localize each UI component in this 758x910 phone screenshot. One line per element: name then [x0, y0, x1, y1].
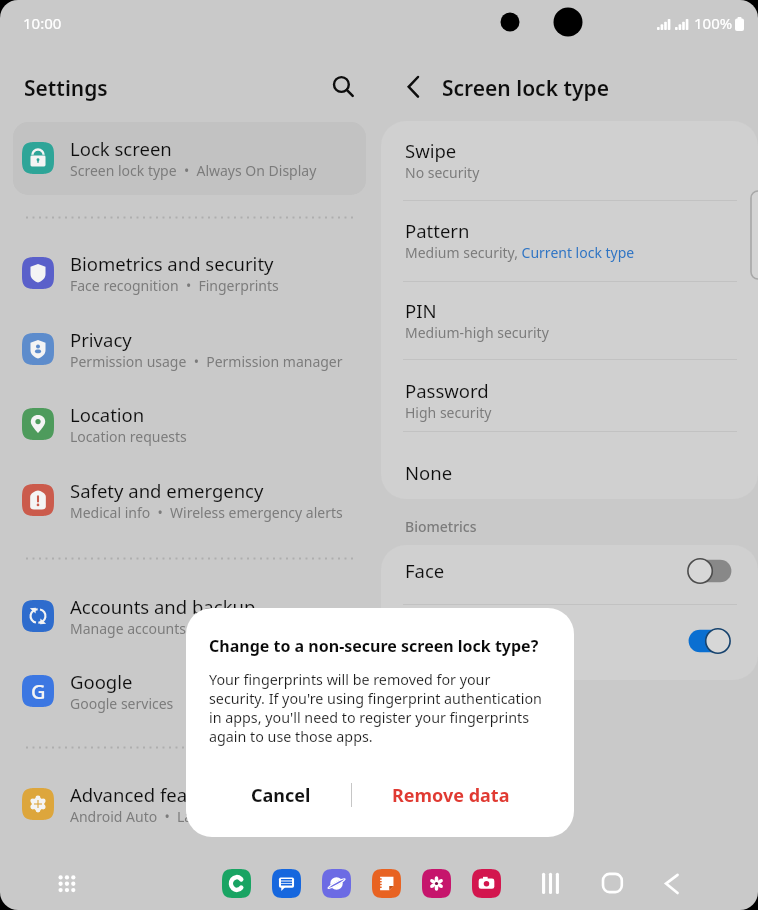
staticText: Biometrics and security: [70, 251, 274, 276]
staticText: Location: [70, 402, 145, 427]
staticText: Google services: [70, 694, 174, 713]
button[interactable]: Search: [324, 67, 360, 103]
staticText: Location requests: [70, 427, 187, 446]
staticText: 10:00: [23, 13, 62, 33]
staticText: Password: [405, 378, 489, 403]
button[interactable]: Recents: [538, 869, 572, 897]
button[interactable]: G: [0, 654, 372, 728]
staticText: Fingerprints: [405, 628, 512, 653]
staticText: Face recognition • Fingerprints: [70, 276, 279, 295]
staticText: 100%: [694, 13, 733, 33]
button[interactable]: Safety and emergency: [0, 463, 372, 537]
button[interactable]: Apps: [50, 867, 84, 901]
button[interactable]: Biometrics and security: [0, 236, 372, 310]
button[interactable]: Location: [0, 387, 372, 461]
button[interactable]: Privacy: [0, 312, 372, 386]
staticText: Google: [70, 669, 133, 694]
button[interactable]: Remove data: [358, 766, 543, 824]
staticText: Medium security, Current lock type: [405, 243, 635, 262]
button[interactable]: None: [381, 435, 758, 513]
staticText: Medium-high security: [405, 323, 549, 342]
button[interactable]: Face: [381, 542, 758, 600]
staticText: Advanced features: [70, 782, 232, 807]
staticText: Android Auto • Labs: [70, 807, 208, 826]
button[interactable]: Face: [684, 554, 732, 588]
staticText: Lock screen: [70, 136, 172, 161]
staticText: Face: [405, 558, 445, 583]
staticText: Cancel: [251, 783, 311, 808]
staticText: Your fingerprints will be removed for yo…: [209, 670, 545, 746]
button[interactable]: Home: [598, 869, 632, 897]
staticText: Screen lock type • Always On Display: [70, 161, 317, 180]
button[interactable]: Messages: [272, 869, 301, 898]
staticText: Accounts and backup: [70, 594, 256, 619]
staticText: None: [405, 460, 453, 485]
staticText: Manage accounts: [70, 619, 187, 638]
button[interactable]: Phone: [222, 869, 251, 898]
staticText: Pattern: [405, 218, 470, 243]
staticText: Permission usage • Permission manager: [70, 352, 343, 371]
staticText: Screen lock type: [442, 74, 609, 103]
button[interactable]: Gallery: [422, 869, 451, 898]
button[interactable]: Accounts and backup: [0, 579, 372, 653]
staticText: High security: [405, 403, 492, 422]
staticText: Safety and emergency: [70, 478, 264, 503]
button[interactable]: Lock screen: [13, 122, 366, 195]
button[interactable]: Password: [381, 362, 758, 440]
staticText: Remove data: [392, 783, 510, 808]
staticText: Privacy: [70, 327, 132, 352]
staticText: Medical info • Wireless emergency alerts: [70, 503, 343, 522]
staticText: Settings: [24, 74, 108, 103]
button[interactable]: Fingerprints: [381, 612, 758, 670]
button[interactable]: Internet: [322, 869, 351, 898]
staticText: Biometrics: [405, 517, 477, 536]
button[interactable]: Advanced features: [0, 767, 372, 841]
staticText: No security: [405, 163, 480, 182]
button[interactable]: Pattern: [381, 202, 758, 280]
button[interactable]: Fingerprints: [684, 624, 732, 658]
button[interactable]: PIN: [381, 282, 758, 360]
staticText: G: [31, 678, 46, 705]
button[interactable]: Swipe: [381, 122, 758, 200]
button[interactable]: Camera: [472, 869, 501, 898]
staticText: Change to a non-secure screen lock type?: [209, 635, 539, 657]
button[interactable]: Notes: [372, 869, 401, 898]
staticText: PIN: [405, 298, 437, 323]
staticText: Swipe: [405, 138, 457, 163]
button[interactable]: Navigate up: [396, 69, 431, 104]
button[interactable]: Back: [658, 869, 692, 897]
button[interactable]: Cancel: [198, 766, 364, 824]
